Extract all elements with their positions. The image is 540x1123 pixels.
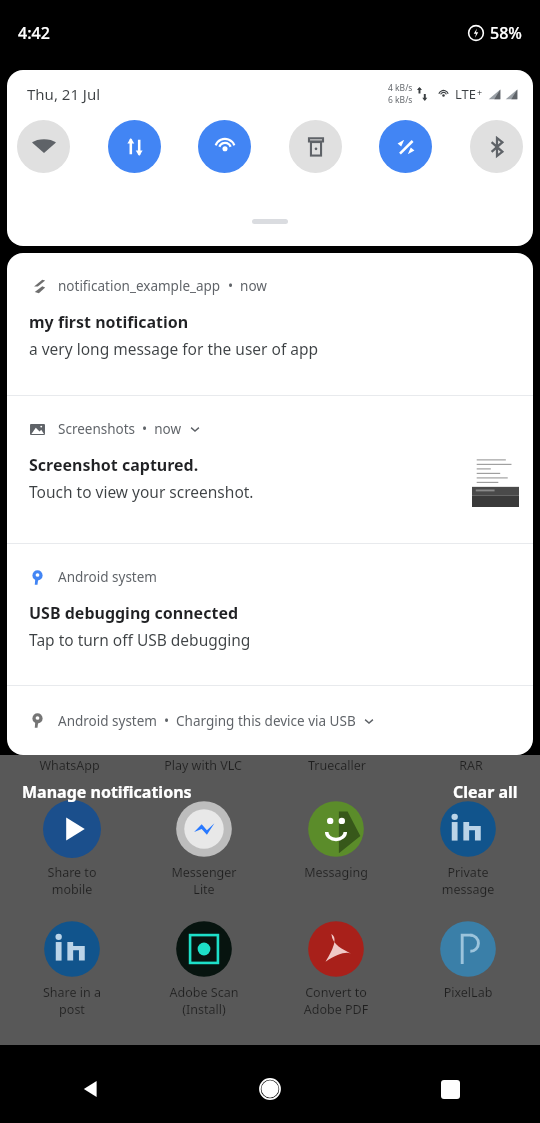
staticText: Play with VLC — [164, 757, 242, 774]
button[interactable]: Messaging — [276, 800, 396, 881]
staticText: message — [408, 881, 528, 898]
staticText: 58% — [490, 22, 522, 44]
staticText: post — [12, 1001, 132, 1018]
staticText: Thu, 21 Jul — [27, 84, 101, 104]
staticText: Adobe Scan — [144, 984, 264, 1001]
staticText: Truecaller — [308, 757, 366, 774]
button[interactable]: notification_example_app — [7, 253, 533, 395]
button[interactable]: Auto rotate — [379, 120, 432, 173]
staticText: PixelLab — [408, 984, 528, 1001]
staticText: 4:42 — [18, 22, 50, 44]
staticText: 6 kB/s — [388, 94, 413, 106]
button[interactable]: Messenger — [144, 800, 264, 898]
staticText: Convert to — [276, 984, 396, 1001]
staticText: Touch to view your screenshot. — [29, 481, 254, 502]
staticText: my first notification — [29, 311, 189, 333]
button[interactable]: Bluetooth — [470, 120, 523, 173]
button[interactable]: Hotspot — [198, 120, 251, 173]
staticText: USB debugging connected — [29, 602, 239, 624]
button[interactable]: Back — [0, 1055, 180, 1123]
staticText: Screenshot captured. — [29, 454, 199, 476]
button[interactable]: Home — [180, 1055, 360, 1123]
button[interactable]: Android system • Charging this device vi… — [7, 686, 533, 755]
staticText: WhatsApp — [39, 757, 100, 774]
staticText: Screenshots • now — [58, 420, 182, 438]
staticText: Messenger — [144, 864, 264, 881]
button[interactable]: Share to — [12, 800, 132, 898]
staticText: Private — [408, 864, 528, 881]
staticText: Android system — [58, 568, 157, 586]
button[interactable]: Recents — [360, 1055, 540, 1123]
staticText: mobile — [12, 881, 132, 898]
button[interactable]: Adobe Scan — [144, 920, 264, 1018]
staticText: Tap to turn off USB debugging — [29, 629, 251, 650]
staticText: 4 kB/s — [388, 82, 413, 94]
staticText: Share in a — [12, 984, 132, 1001]
button[interactable]: Manage notifications — [22, 781, 192, 803]
staticText: Share to — [12, 864, 132, 881]
staticText: Manage notifications — [22, 781, 192, 803]
button[interactable]: Clear all — [453, 781, 518, 803]
button[interactable]: Private — [408, 800, 528, 898]
staticText: LTE — [455, 85, 477, 103]
button[interactable]: Android system — [7, 544, 533, 685]
staticText: notification_example_app — [58, 277, 221, 295]
staticText: (Install) — [144, 1001, 264, 1018]
staticText: Lite — [144, 881, 264, 898]
button[interactable]: Wi-Fi — [17, 120, 70, 173]
staticText: Adobe PDF — [276, 1001, 396, 1018]
button[interactable]: Share in a — [12, 920, 132, 1018]
staticText: RAR — [459, 757, 483, 774]
staticText: Messaging — [276, 864, 396, 881]
button[interactable]: Flashlight — [289, 120, 342, 173]
staticText: Android system • Charging this device vi… — [58, 712, 356, 730]
button[interactable]: PixelLab — [408, 920, 528, 1001]
staticText: • now — [221, 277, 267, 295]
button[interactable]: Convert to — [276, 920, 396, 1018]
button[interactable]: Mobile data — [108, 120, 161, 173]
staticText: a very long message for the user of app — [29, 338, 319, 359]
staticText: Clear all — [453, 781, 518, 803]
staticText: + — [477, 86, 483, 98]
button[interactable] — [252, 219, 288, 224]
button[interactable]: Screenshots • now — [7, 396, 533, 543]
